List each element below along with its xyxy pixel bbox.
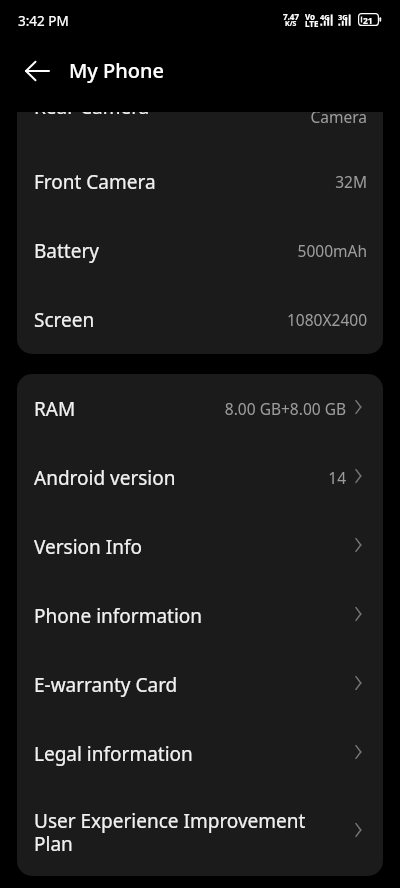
button[interactable]: Phone information xyxy=(17,581,383,650)
staticText: Version Info xyxy=(34,534,338,560)
staticText: 50MP+8MP+2MP Camera xyxy=(243,112,367,128)
button[interactable]: Legal information xyxy=(17,719,383,788)
staticText: Phone information xyxy=(34,603,338,629)
button[interactable]: Rear Camera xyxy=(17,112,383,147)
button[interactable]: Screen xyxy=(17,285,383,354)
button[interactable]: User Experience Improvement Plan xyxy=(17,788,383,876)
staticText: Rear Camera xyxy=(34,112,235,120)
button[interactable]: Front Camera xyxy=(17,147,383,216)
staticText: 5000mAh xyxy=(297,240,367,261)
staticText: Legal information xyxy=(34,741,338,767)
staticText: 8.00 GB+8.00 GB xyxy=(224,398,346,419)
staticText: 4G xyxy=(320,12,330,22)
staticText: 7.47 xyxy=(283,11,299,22)
staticText: 1080X2400 xyxy=(286,309,367,330)
staticText: Screen xyxy=(34,307,278,333)
button[interactable]: Battery xyxy=(17,216,383,285)
staticText: RAM xyxy=(34,396,216,422)
staticText: 32M xyxy=(335,171,367,192)
button[interactable]: Back xyxy=(13,47,61,95)
staticText: 21 xyxy=(363,15,373,27)
staticText: Front Camera xyxy=(34,169,327,195)
staticText: Android version xyxy=(34,465,320,491)
staticText: Battery xyxy=(34,238,289,264)
button[interactable]: Version Info xyxy=(17,512,383,581)
staticText: Vo xyxy=(305,11,316,22)
button[interactable]: E-warranty Card xyxy=(17,650,383,719)
button[interactable]: Android version xyxy=(17,443,383,512)
staticText: E-warranty Card xyxy=(34,672,338,698)
staticText: My Phone xyxy=(69,57,165,84)
staticText: LTE xyxy=(305,18,319,29)
staticText: User Experience Improvement Plan xyxy=(34,808,338,857)
staticText: 3G xyxy=(338,12,348,22)
staticText: 3:42 PM xyxy=(18,12,69,30)
staticText: 14 xyxy=(328,467,346,488)
staticText: K/S xyxy=(285,19,297,29)
button[interactable]: RAM xyxy=(17,374,383,443)
